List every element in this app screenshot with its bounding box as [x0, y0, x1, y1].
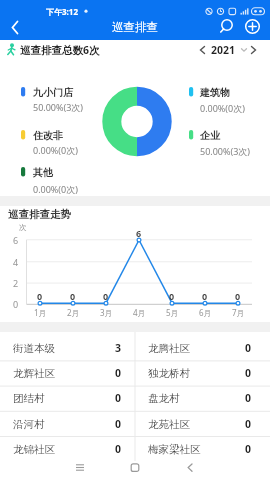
- staticText: 4: [13, 256, 19, 268]
- button[interactable]: [0, 336, 135, 361]
- staticText: 0: [115, 366, 122, 380]
- staticText: 建筑物: [200, 86, 230, 99]
- button[interactable]: [196, 40, 262, 60]
- staticText: 0.00%(0次): [33, 144, 78, 156]
- button[interactable]: [135, 361, 270, 386]
- staticText: 0: [245, 442, 252, 456]
- staticText: 0: [235, 290, 241, 302]
- staticText: 龙腾社区: [148, 342, 190, 355]
- staticText: 企业: [200, 129, 220, 142]
- staticText: 6: [13, 234, 19, 246]
- staticText: 0: [115, 391, 122, 405]
- staticText: 独龙桥村: [148, 367, 190, 380]
- staticText: 沿河村: [13, 418, 45, 431]
- staticText: 下午3:12: [46, 6, 78, 17]
- staticText: 0.00%(0次): [200, 102, 245, 114]
- staticText: 50.00%(3次): [33, 101, 84, 113]
- staticText: 团结村: [13, 392, 45, 405]
- button[interactable]: [242, 16, 264, 40]
- staticText: 0: [245, 366, 252, 380]
- staticText: 5月: [166, 307, 179, 318]
- staticText: 3月: [100, 307, 113, 318]
- staticText: 住改非: [33, 129, 63, 142]
- staticText: 4月: [133, 307, 146, 318]
- button[interactable]: [0, 361, 135, 386]
- staticText: 龙苑社区: [148, 418, 190, 431]
- staticText: 1月: [34, 307, 47, 318]
- staticText: 0: [169, 290, 175, 302]
- staticText: 7月: [232, 307, 245, 318]
- button[interactable]: [135, 411, 270, 436]
- button[interactable]: [4, 18, 28, 38]
- button[interactable]: [0, 411, 135, 436]
- button[interactable]: [0, 436, 135, 461]
- staticText: 街道本级: [13, 342, 55, 355]
- staticText: 0: [245, 341, 252, 355]
- staticText: 0: [115, 442, 122, 456]
- staticText: 盘龙村: [148, 392, 180, 405]
- staticText: 6: [136, 227, 142, 239]
- button[interactable]: [135, 336, 270, 361]
- staticText: 2021: [211, 43, 236, 57]
- staticText: 0: [245, 417, 252, 431]
- staticText: 0: [202, 290, 208, 302]
- button[interactable]: [216, 16, 238, 40]
- staticText: 龙辉社区: [13, 367, 55, 380]
- button[interactable]: [135, 386, 270, 411]
- staticText: 0: [103, 290, 109, 302]
- button[interactable]: [168, 456, 212, 480]
- staticText: 2: [13, 277, 19, 289]
- staticText: 2月: [67, 307, 80, 318]
- staticText: 梅家梁社区: [148, 443, 201, 456]
- staticText: 0: [37, 290, 43, 302]
- staticText: 巡查排查总数6次: [20, 43, 100, 57]
- staticText: 九小门店: [33, 86, 73, 99]
- staticText: 巡查排查走势: [8, 208, 71, 221]
- staticText: 50.00%(3次): [200, 145, 251, 157]
- staticText: 巡查排查: [112, 20, 158, 34]
- staticText: 其他: [33, 166, 53, 179]
- button[interactable]: [0, 386, 135, 411]
- button[interactable]: [113, 456, 157, 480]
- button[interactable]: [135, 436, 270, 461]
- staticText: 0: [70, 290, 76, 302]
- staticText: 次: [19, 223, 27, 232]
- staticText: 0.00%(0次): [33, 183, 78, 195]
- staticText: 龙锦社区: [13, 443, 55, 456]
- button[interactable]: [58, 456, 102, 480]
- staticText: 3: [115, 341, 122, 355]
- staticText: 0: [115, 417, 122, 431]
- staticText: 6月: [199, 307, 212, 318]
- staticText: 0: [245, 391, 252, 405]
- staticText: 0: [13, 298, 19, 310]
